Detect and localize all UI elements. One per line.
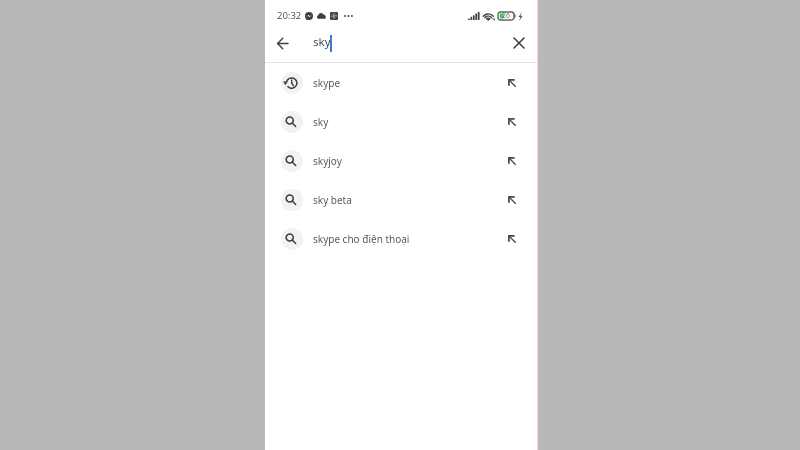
button[interactable]: skyjoy <box>265 141 538 180</box>
button[interactable]: skype <box>265 63 538 102</box>
button[interactable]: sky <box>265 102 538 141</box>
button[interactable]: Clear search <box>505 29 533 57</box>
staticText: 20:32 <box>277 9 302 22</box>
staticText: sky <box>313 34 331 50</box>
button[interactable]: skype cho điện thoại <box>265 219 538 258</box>
staticText: 26 <box>502 11 511 21</box>
button[interactable]: sky beta <box>265 180 538 219</box>
staticText: sky beta <box>313 193 352 207</box>
staticText: skype <box>313 76 341 90</box>
button[interactable]: Back <box>268 29 296 57</box>
staticText: sky <box>313 115 329 129</box>
staticText: skyjoy <box>313 154 342 168</box>
staticText: skype cho điện thoại <box>313 232 410 246</box>
